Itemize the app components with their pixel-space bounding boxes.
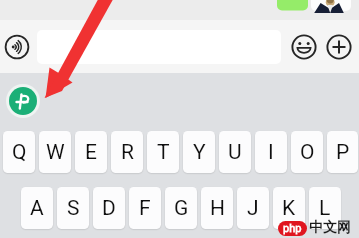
staticText: Y [193, 140, 206, 165]
button[interactable]: I [255, 131, 287, 173]
button[interactable]: Q [3, 131, 35, 173]
button[interactable]: Y [183, 131, 215, 173]
staticText: A [30, 196, 44, 221]
staticText: S [67, 196, 80, 221]
staticText: U [228, 140, 242, 165]
button[interactable]: J [237, 187, 269, 229]
button[interactable]: T [147, 131, 179, 173]
button[interactable]: P [327, 131, 358, 173]
button[interactable]: W [39, 131, 71, 173]
staticText: L [319, 196, 331, 221]
staticText: E [85, 140, 97, 165]
button[interactable]: Message input [37, 30, 281, 64]
button[interactable]: More options [326, 34, 352, 60]
staticText: O [300, 140, 315, 165]
staticText: Q [12, 140, 27, 165]
button[interactable]: H [201, 187, 233, 229]
staticText: G [174, 196, 189, 221]
staticText: K [282, 196, 296, 221]
button[interactable]: O [291, 131, 323, 173]
button[interactable]: Pinyin input method [6, 84, 40, 118]
button[interactable]: L [309, 187, 341, 229]
button[interactable]: R [111, 131, 143, 173]
staticText: P [336, 140, 350, 165]
staticText: H [210, 196, 225, 221]
staticText: D [102, 196, 116, 221]
staticText: R [121, 140, 134, 165]
button[interactable]: A [21, 187, 53, 229]
button[interactable]: D [93, 187, 125, 229]
staticText: F [139, 196, 151, 221]
button[interactable]: G [165, 187, 197, 229]
button[interactable]: K [273, 187, 305, 229]
staticText: I [268, 140, 274, 165]
staticText: T [157, 140, 170, 165]
button[interactable]: Voice input [4, 34, 30, 60]
staticText: W [46, 140, 65, 165]
staticText: 中文网 [309, 219, 351, 237]
button[interactable]: F [129, 187, 161, 229]
button[interactable]: Emoji [291, 34, 317, 60]
staticText: J [247, 196, 259, 221]
button[interactable]: U [219, 131, 251, 173]
staticText: php [283, 222, 302, 235]
button[interactable]: S [57, 187, 89, 229]
button[interactable]: E [75, 131, 107, 173]
